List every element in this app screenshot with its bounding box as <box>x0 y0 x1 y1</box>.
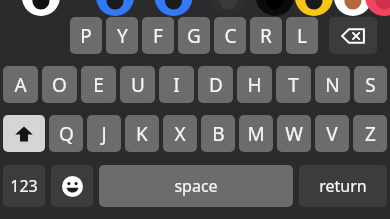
staticText: X <box>174 121 186 147</box>
staticText: O <box>52 72 67 98</box>
staticText: I <box>173 72 180 98</box>
button[interactable]: U <box>120 66 155 103</box>
staticText: return <box>319 175 367 197</box>
button[interactable]: C <box>214 17 246 54</box>
button[interactable]: S <box>354 66 387 103</box>
button[interactable]: H <box>237 66 272 103</box>
staticText: V <box>326 121 338 147</box>
staticText: C <box>224 23 237 49</box>
staticText: 123 <box>10 175 38 197</box>
staticText: U <box>131 72 145 98</box>
button[interactable]: G <box>178 17 210 54</box>
button[interactable]: Z <box>353 115 387 152</box>
staticText: M <box>247 121 265 147</box>
button[interactable]: space <box>99 165 293 207</box>
button[interactable]: D <box>198 66 233 103</box>
button[interactable]: X <box>163 115 197 152</box>
button[interactable]: A <box>3 66 38 103</box>
staticText: A <box>14 72 27 98</box>
staticText: L <box>297 23 307 49</box>
button[interactable]: I <box>159 66 194 103</box>
staticText: F <box>153 23 163 49</box>
button[interactable]: P <box>70 17 102 54</box>
staticText: T <box>288 72 299 98</box>
staticText: Y <box>117 23 128 49</box>
button[interactable]: L <box>286 17 318 54</box>
button[interactable]: K <box>125 115 159 152</box>
button[interactable]: Y <box>106 17 138 54</box>
button[interactable]: F <box>142 17 174 54</box>
button[interactable]: O <box>42 66 77 103</box>
button[interactable]: J <box>87 115 121 152</box>
button[interactable]: Emoji <box>51 165 93 207</box>
staticText: Q <box>59 121 74 147</box>
button[interactable]: W <box>277 115 311 152</box>
staticText: D <box>209 72 223 98</box>
staticText: K <box>136 121 148 147</box>
staticText: G <box>187 23 201 49</box>
button[interactable]: N <box>315 66 350 103</box>
button[interactable]: V <box>315 115 349 152</box>
button[interactable]: 123 <box>3 165 45 207</box>
button[interactable]: Q <box>49 115 83 152</box>
button[interactable]: Shift <box>3 115 45 152</box>
staticText: H <box>247 72 262 98</box>
button[interactable]: return <box>299 165 387 207</box>
button[interactable]: Backspace <box>329 17 377 54</box>
button[interactable]: R <box>250 17 282 54</box>
button[interactable]: T <box>276 66 311 103</box>
staticText: W <box>285 121 303 147</box>
staticText: S <box>365 72 376 98</box>
staticText: B <box>212 121 225 147</box>
staticText: R <box>260 23 272 49</box>
staticText: space <box>174 175 218 197</box>
staticText: P <box>80 23 92 49</box>
button[interactable]: M <box>239 115 273 152</box>
staticText: E <box>93 72 104 98</box>
button[interactable]: B <box>201 115 235 152</box>
staticText: J <box>101 121 107 147</box>
button[interactable]: E <box>81 66 116 103</box>
staticText: Z <box>365 121 376 147</box>
staticText: N <box>325 72 340 98</box>
